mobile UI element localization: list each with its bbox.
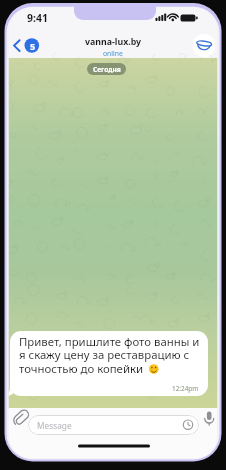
staticText: Привет, пришлите фото ванны и: [19, 334, 200, 350]
button[interactable]: [11, 36, 41, 55]
staticText: 5: [30, 40, 36, 52]
button[interactable]: [200, 408, 218, 434]
staticText: я скажу цену за реставрацию с: [19, 347, 190, 363]
button[interactable]: [11, 408, 29, 434]
staticText: Сегодня: [93, 65, 121, 74]
staticText: online: [103, 49, 123, 58]
button[interactable]: Message: [28, 415, 199, 435]
staticText: 12:24pm: [172, 384, 199, 393]
staticText: vanna-lux.by: [85, 36, 142, 48]
staticText: Message: [37, 420, 72, 431]
staticText: точностью до копейки: [19, 361, 144, 377]
staticText: 9:41: [27, 11, 48, 23]
button[interactable]: [192, 34, 216, 58]
